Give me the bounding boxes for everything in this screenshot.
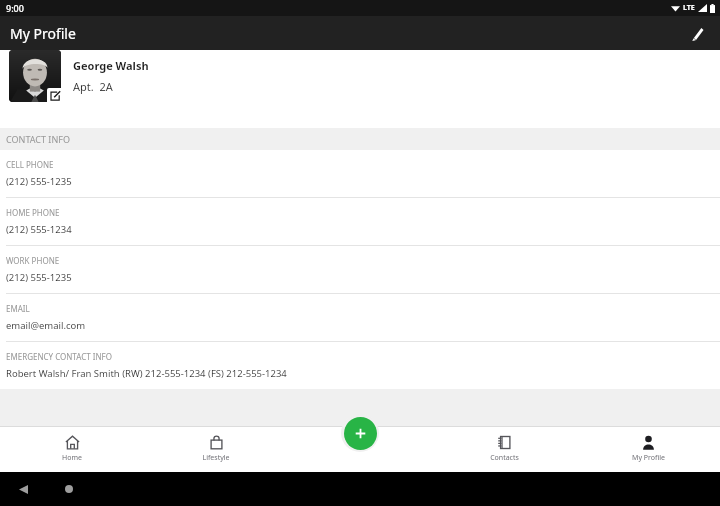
staticText: (212) 555-1234 <box>6 223 72 236</box>
staticText: My Profile <box>10 24 76 43</box>
staticText: LTE <box>683 3 695 13</box>
button[interactable]: Change photo <box>47 88 63 104</box>
staticText: email@email.com <box>6 319 86 332</box>
staticText: EMERGENCY CONTACT INFO <box>6 351 112 362</box>
button[interactable]: Edit profile <box>682 18 712 48</box>
staticText: George Walsh <box>73 58 149 73</box>
button[interactable]: EMAIL <box>0 294 720 342</box>
staticText: (212) 555-1235 <box>6 175 72 188</box>
button[interactable]: HOME PHONE <box>0 198 720 246</box>
button[interactable]: Lifestyle <box>144 426 288 472</box>
staticText: Robert Walsh/ Fran Smith (RW) 212-555-12… <box>6 367 287 380</box>
staticText: My Profile <box>632 453 665 463</box>
button[interactable]: Home <box>0 426 144 472</box>
button[interactable]: Change photo <box>0 50 720 128</box>
staticText: (212) 555-1235 <box>6 271 72 284</box>
staticText: CONTACT INFO <box>6 133 70 145</box>
button[interactable]: Back <box>12 478 34 500</box>
button[interactable]: Add <box>344 417 377 450</box>
button[interactable]: CELL PHONE <box>0 150 720 198</box>
button[interactable]: Home <box>58 478 80 500</box>
staticText: CELL PHONE <box>6 159 54 170</box>
staticText: Apt. 2A <box>73 79 113 94</box>
staticText: HOME PHONE <box>6 207 60 218</box>
button[interactable]: My Profile <box>576 426 720 472</box>
staticText: EMAIL <box>6 303 30 314</box>
staticText: WORK PHONE <box>6 255 60 266</box>
button[interactable]: EMERGENCY CONTACT INFO <box>0 342 720 389</box>
staticText: Home <box>62 453 82 463</box>
button[interactable]: WORK PHONE <box>0 246 720 294</box>
staticText: Contacts <box>490 453 519 463</box>
button[interactable]: Contacts <box>432 426 576 472</box>
staticText: Lifestyle <box>202 453 230 463</box>
staticText: 9:00 <box>6 2 24 14</box>
